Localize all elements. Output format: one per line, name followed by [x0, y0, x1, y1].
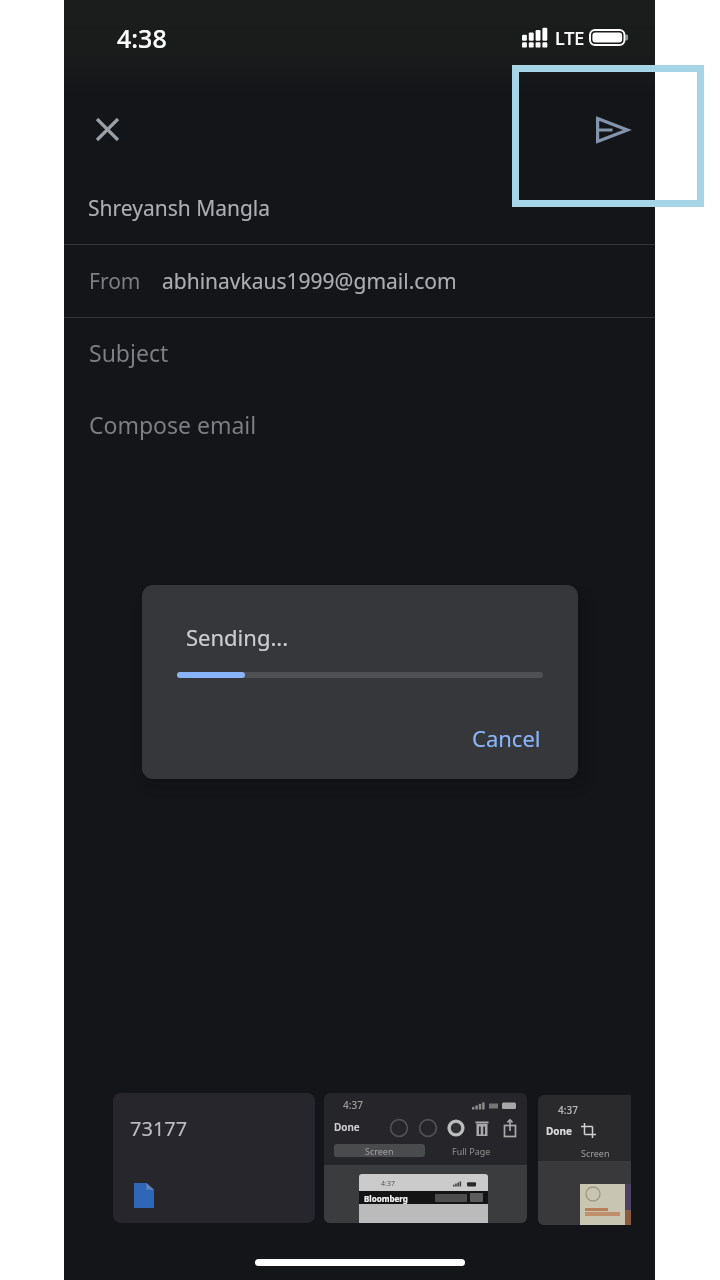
button[interactable]: Compose email — [64, 390, 655, 458]
staticText: Sending... — [186, 622, 289, 652]
staticText: Screen — [365, 1145, 394, 1157]
staticText: abhinavkaus1999@gmail.com — [162, 267, 457, 296]
button[interactable]: Attachment 73177 — [113, 1093, 315, 1223]
staticText: Cancel — [472, 723, 541, 753]
button[interactable]: Subject — [64, 318, 655, 386]
staticText: Subject — [89, 337, 169, 368]
staticText: LTE — [555, 26, 585, 51]
staticText: Screen — [581, 1147, 610, 1159]
button[interactable]: From — [64, 245, 655, 317]
staticText: Compose email — [89, 409, 257, 440]
staticText: Bloomberg — [364, 1193, 408, 1204]
staticText: 4:37 — [343, 1098, 363, 1112]
staticText: Done — [546, 1124, 573, 1138]
staticText: From — [89, 267, 141, 296]
button[interactable]: Screenshot attachment 2 — [538, 1095, 631, 1225]
button[interactable]: Send — [580, 98, 644, 162]
staticText: Done — [334, 1120, 360, 1134]
staticText: 4:37 — [558, 1103, 578, 1117]
staticText: 73177 — [130, 1115, 188, 1142]
button[interactable]: Screenshot attachment — [324, 1093, 527, 1223]
staticText: 4:37 — [381, 1179, 395, 1189]
staticText: 4:38 — [117, 21, 167, 55]
button[interactable]: Close — [77, 99, 137, 159]
staticText: Shreyansh Mangla — [88, 194, 271, 223]
staticText: Full Page — [452, 1145, 491, 1157]
button[interactable]: Cancel — [462, 715, 551, 761]
